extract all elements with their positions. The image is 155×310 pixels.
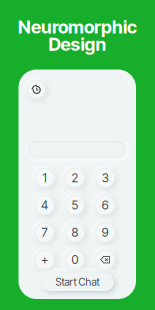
button[interactable]: 8 <box>65 222 85 242</box>
staticText: Neuromorphic <box>18 16 137 38</box>
button[interactable]: 7 <box>35 222 55 242</box>
staticText: 4 <box>41 198 48 212</box>
button[interactable]: 0 <box>65 250 85 270</box>
staticText: + <box>41 252 48 267</box>
staticText: 2 <box>71 170 78 185</box>
staticText: Start Chat <box>55 276 99 288</box>
button[interactable]: History <box>27 80 46 99</box>
button[interactable]: 1 <box>35 168 55 188</box>
button[interactable]: 6 <box>95 195 115 215</box>
staticText: 1 <box>43 170 47 185</box>
staticText: 5 <box>71 198 78 212</box>
staticText: 0 <box>71 252 78 267</box>
button[interactable]: 5 <box>65 195 85 215</box>
button[interactable]: 3 <box>95 168 115 188</box>
staticText: Design <box>48 33 106 55</box>
staticText: 9 <box>102 225 109 240</box>
staticText: 3 <box>102 170 109 185</box>
button[interactable]: 9 <box>95 222 115 242</box>
button[interactable]: 2 <box>65 168 85 188</box>
button[interactable] <box>95 250 115 270</box>
staticText: 8 <box>71 225 78 240</box>
staticText: 6 <box>102 198 109 212</box>
staticText: 7 <box>42 225 48 240</box>
button[interactable]: 4 <box>35 195 55 215</box>
button[interactable]: Start Chat <box>41 273 114 291</box>
button[interactable]: + <box>35 250 55 270</box>
